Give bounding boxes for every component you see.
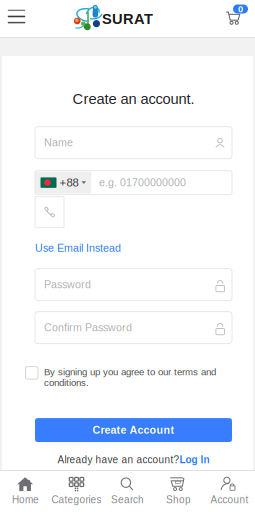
button[interactable]: Cart (218, 0, 255, 37)
button[interactable]: Home (0, 470, 51, 512)
staticText: Categories (51, 494, 101, 505)
staticText: +88 (59, 176, 78, 189)
staticText: Password (44, 279, 91, 291)
staticText: 0 (238, 4, 243, 14)
staticText: Account (210, 494, 248, 505)
button[interactable]: Shop (153, 470, 204, 512)
button[interactable]: Search (102, 470, 153, 512)
staticText: Search (111, 494, 144, 505)
staticText: Log In (179, 454, 209, 465)
staticText: Already have an account? (57, 454, 179, 465)
button[interactable]: Categories (51, 470, 102, 512)
button[interactable]: Phone number (35, 197, 64, 228)
staticText: Home (12, 494, 39, 505)
button[interactable]: Create Account (35, 418, 232, 442)
staticText: By signing up you agree to our terms and… (44, 367, 216, 388)
staticText: Create Account (92, 424, 174, 436)
staticText: Confirm Password (44, 322, 132, 334)
button[interactable]: Menu (0, 0, 33, 37)
staticText: e.g. 01700000000 (99, 177, 186, 189)
button[interactable]: Use Email Instead (35, 243, 232, 254)
button[interactable]: Log In (179, 454, 209, 465)
staticText: SURAT (102, 11, 153, 27)
staticText: Shop (166, 494, 191, 505)
staticText: Use Email Instead (35, 242, 121, 254)
button[interactable]: Country code +88 (35, 172, 91, 194)
staticText: Create an account. (72, 91, 194, 107)
button[interactable]: Account (204, 470, 255, 512)
button[interactable]: Agree to terms and conditions (25, 367, 38, 379)
staticText: Name (44, 137, 73, 149)
